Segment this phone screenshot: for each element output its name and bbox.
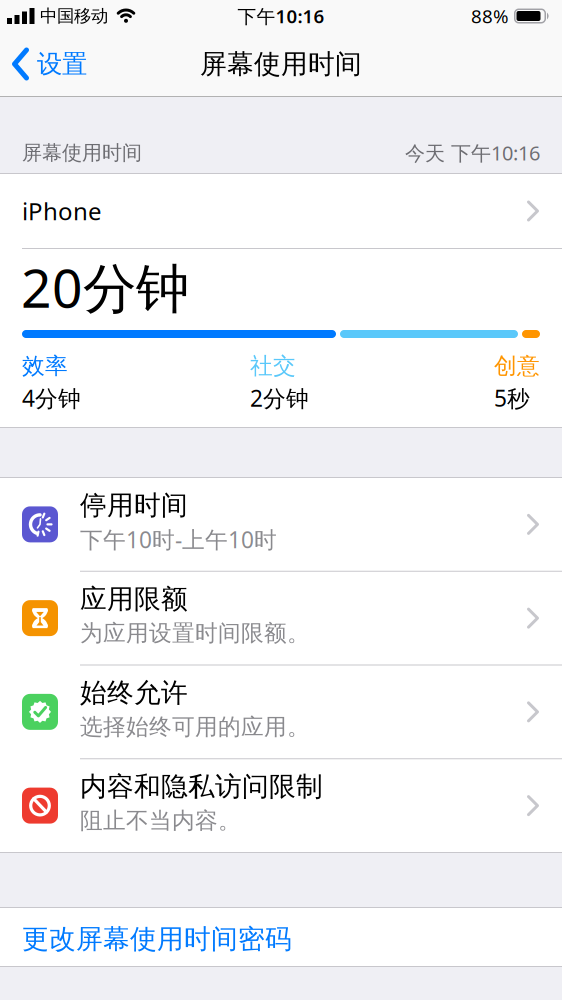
staticText: 设置 <box>37 48 87 79</box>
button[interactable]: iPhone <box>0 174 562 248</box>
button[interactable]: 应用限额 <box>0 572 562 665</box>
staticText: 下午10:16 <box>237 4 324 28</box>
staticText: 始终允许 <box>80 676 188 709</box>
staticText: 为应用设置时间限额。 <box>80 619 310 647</box>
button[interactable]: 始终允许 <box>0 665 562 758</box>
staticText: 88% <box>471 4 509 28</box>
staticText: 2分钟 <box>250 383 309 413</box>
staticText: 更改屏幕使用时间密码 <box>22 923 292 955</box>
staticText: 社交 <box>250 352 296 380</box>
button[interactable]: 更改屏幕使用时间密码 <box>0 908 562 966</box>
staticText: 效率 <box>22 352 68 380</box>
staticText: 选择始终可用的应用。 <box>80 713 310 741</box>
staticText: 停用时间 <box>80 489 188 522</box>
button[interactable]: 返回设置 <box>0 47 87 80</box>
staticText: 应用限额 <box>80 583 188 615</box>
staticText: 创意 <box>494 352 540 380</box>
staticText: 阻止不当内容。 <box>80 807 241 834</box>
staticText: iPhone <box>22 195 102 227</box>
staticText: 屏幕使用时间 <box>200 48 362 80</box>
button[interactable]: 停用时间 <box>0 478 562 571</box>
staticText: 20分钟 <box>21 252 189 322</box>
staticText: 下午10时-上午10时 <box>80 524 277 554</box>
staticText: 今天 下午10:16 <box>405 139 540 166</box>
staticText: 屏幕使用时间 <box>22 140 142 165</box>
staticText: 内容和隐私访问限制 <box>80 770 323 803</box>
staticText: 中国移动 <box>40 5 108 27</box>
button[interactable]: 内容和隐私访问限制 <box>0 759 562 852</box>
staticText: 4分钟 <box>22 383 81 413</box>
staticText: 5秒 <box>494 383 530 413</box>
